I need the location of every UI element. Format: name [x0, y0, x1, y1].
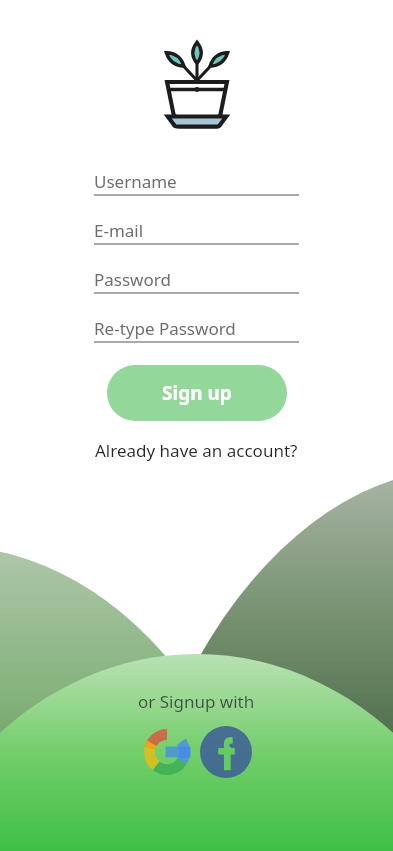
staticText: Re-type Password: [94, 317, 236, 340]
button[interactable]: Sign up: [107, 365, 287, 421]
button[interactable]: Sign up with Facebook: [198, 724, 254, 780]
staticText: Sign up: [162, 380, 232, 406]
button[interactable]: Username: [94, 170, 299, 196]
button[interactable]: E-mail: [94, 219, 299, 245]
button[interactable]: Password: [94, 268, 299, 294]
staticText: Already have an account?: [95, 439, 298, 462]
staticText: E-mail: [94, 219, 144, 242]
button[interactable]: Already have an account?: [89, 436, 304, 465]
staticText: or Signup with: [138, 690, 255, 713]
staticText: Username: [94, 170, 177, 193]
staticText: Password: [94, 268, 171, 291]
button[interactable]: Re-type Password: [94, 317, 299, 343]
button[interactable]: Sign up with Google: [140, 725, 194, 779]
